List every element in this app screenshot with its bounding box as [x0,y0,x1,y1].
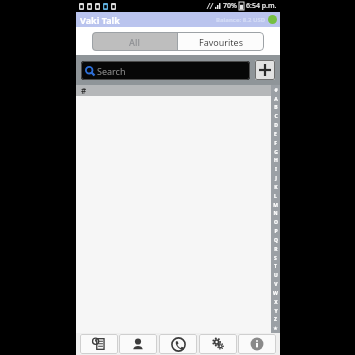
staticText: V [274,281,278,288]
staticText: Z [274,316,277,323]
staticText: O [274,219,278,226]
staticText: S [274,255,277,262]
staticText: Search [97,65,126,77]
staticText: E [274,131,277,138]
staticText: Q [274,237,278,244]
staticText: F [274,140,277,147]
staticText: X [274,299,278,306]
button[interactable]: Settings [199,334,237,354]
button[interactable]: Add contact [255,60,275,80]
staticText: B [274,104,278,111]
staticText: 6:54 p.m. [246,1,277,11]
staticText: All [129,36,140,48]
staticText: N [273,210,278,217]
button[interactable]: Contacts [119,334,157,354]
staticText: A [274,96,278,103]
staticText: Y [274,308,278,315]
staticText: C [274,113,278,120]
button[interactable]: Info [238,334,276,354]
button[interactable]: Search [81,61,250,80]
staticText: R [274,246,278,253]
staticText: 70% [223,1,237,11]
button[interactable]: Favourites [178,32,264,51]
staticText: I [275,166,277,173]
staticText: M [273,202,278,209]
button[interactable]: History [80,334,118,354]
staticText: J [275,175,277,182]
staticText: L [274,193,277,200]
button[interactable]: Alphabet index [271,85,280,333]
staticText: T [274,263,277,270]
staticText: H [274,157,278,164]
staticText: G [274,149,278,156]
staticText: # [81,85,87,96]
staticText: D [274,122,278,129]
staticText: # [274,87,278,94]
staticText: Favourites [199,36,243,48]
staticText: P [274,228,278,235]
staticText: Vaki Talk [80,14,120,26]
staticText: W [273,290,278,297]
staticText: K [274,184,278,191]
staticText: Balance: 8.2 USD [216,16,266,24]
staticText: U [274,272,278,279]
button[interactable]: Dialer [159,334,197,354]
staticText: ★ [273,325,278,331]
button[interactable]: All [92,32,177,51]
